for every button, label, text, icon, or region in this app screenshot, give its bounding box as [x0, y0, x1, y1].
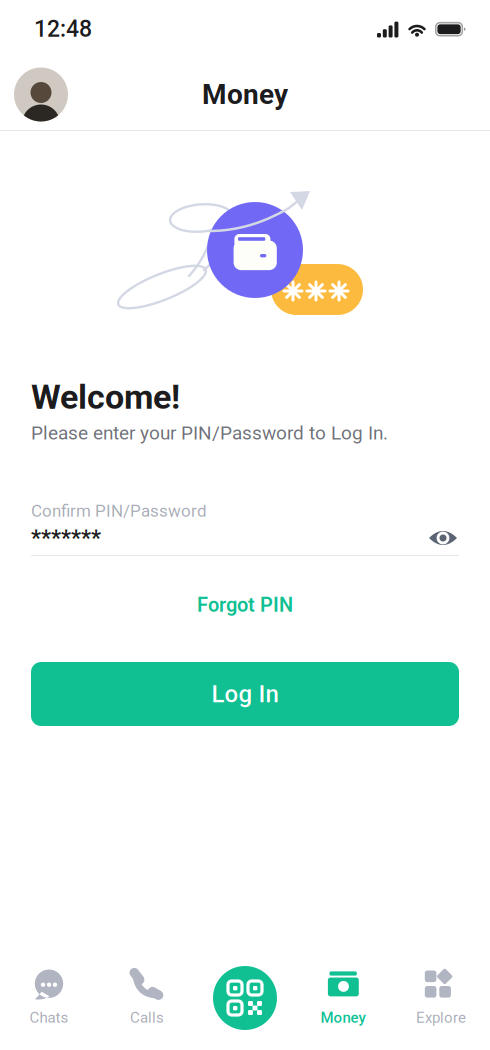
staticText: Forgot PIN [197, 593, 293, 617]
staticText: Money [202, 78, 288, 111]
button[interactable]: Chats [0, 955, 98, 1041]
staticText: ******* [31, 525, 101, 551]
button[interactable]: Calls [98, 955, 196, 1041]
button[interactable]: Explore [392, 955, 490, 1041]
staticText: Explore [416, 1009, 466, 1026]
staticText: Welcome! [31, 377, 180, 417]
button[interactable]: Money [294, 955, 392, 1041]
staticText: Chats [29, 1009, 68, 1026]
staticText: Money [320, 1009, 365, 1026]
button[interactable]: Log In [31, 662, 459, 726]
staticText: Confirm PIN/Password [31, 501, 207, 521]
button[interactable]: Show password [427, 526, 459, 550]
staticText: Calls [130, 1009, 164, 1026]
button[interactable]: Profile [14, 67, 68, 121]
staticText: Log In [211, 680, 278, 708]
staticText: Please enter your PIN/Password to Log In… [31, 422, 388, 444]
button[interactable]: Forgot PIN [31, 585, 459, 625]
staticText: 12:48 [34, 15, 92, 42]
button[interactable]: Scan QR code [196, 955, 294, 1041]
